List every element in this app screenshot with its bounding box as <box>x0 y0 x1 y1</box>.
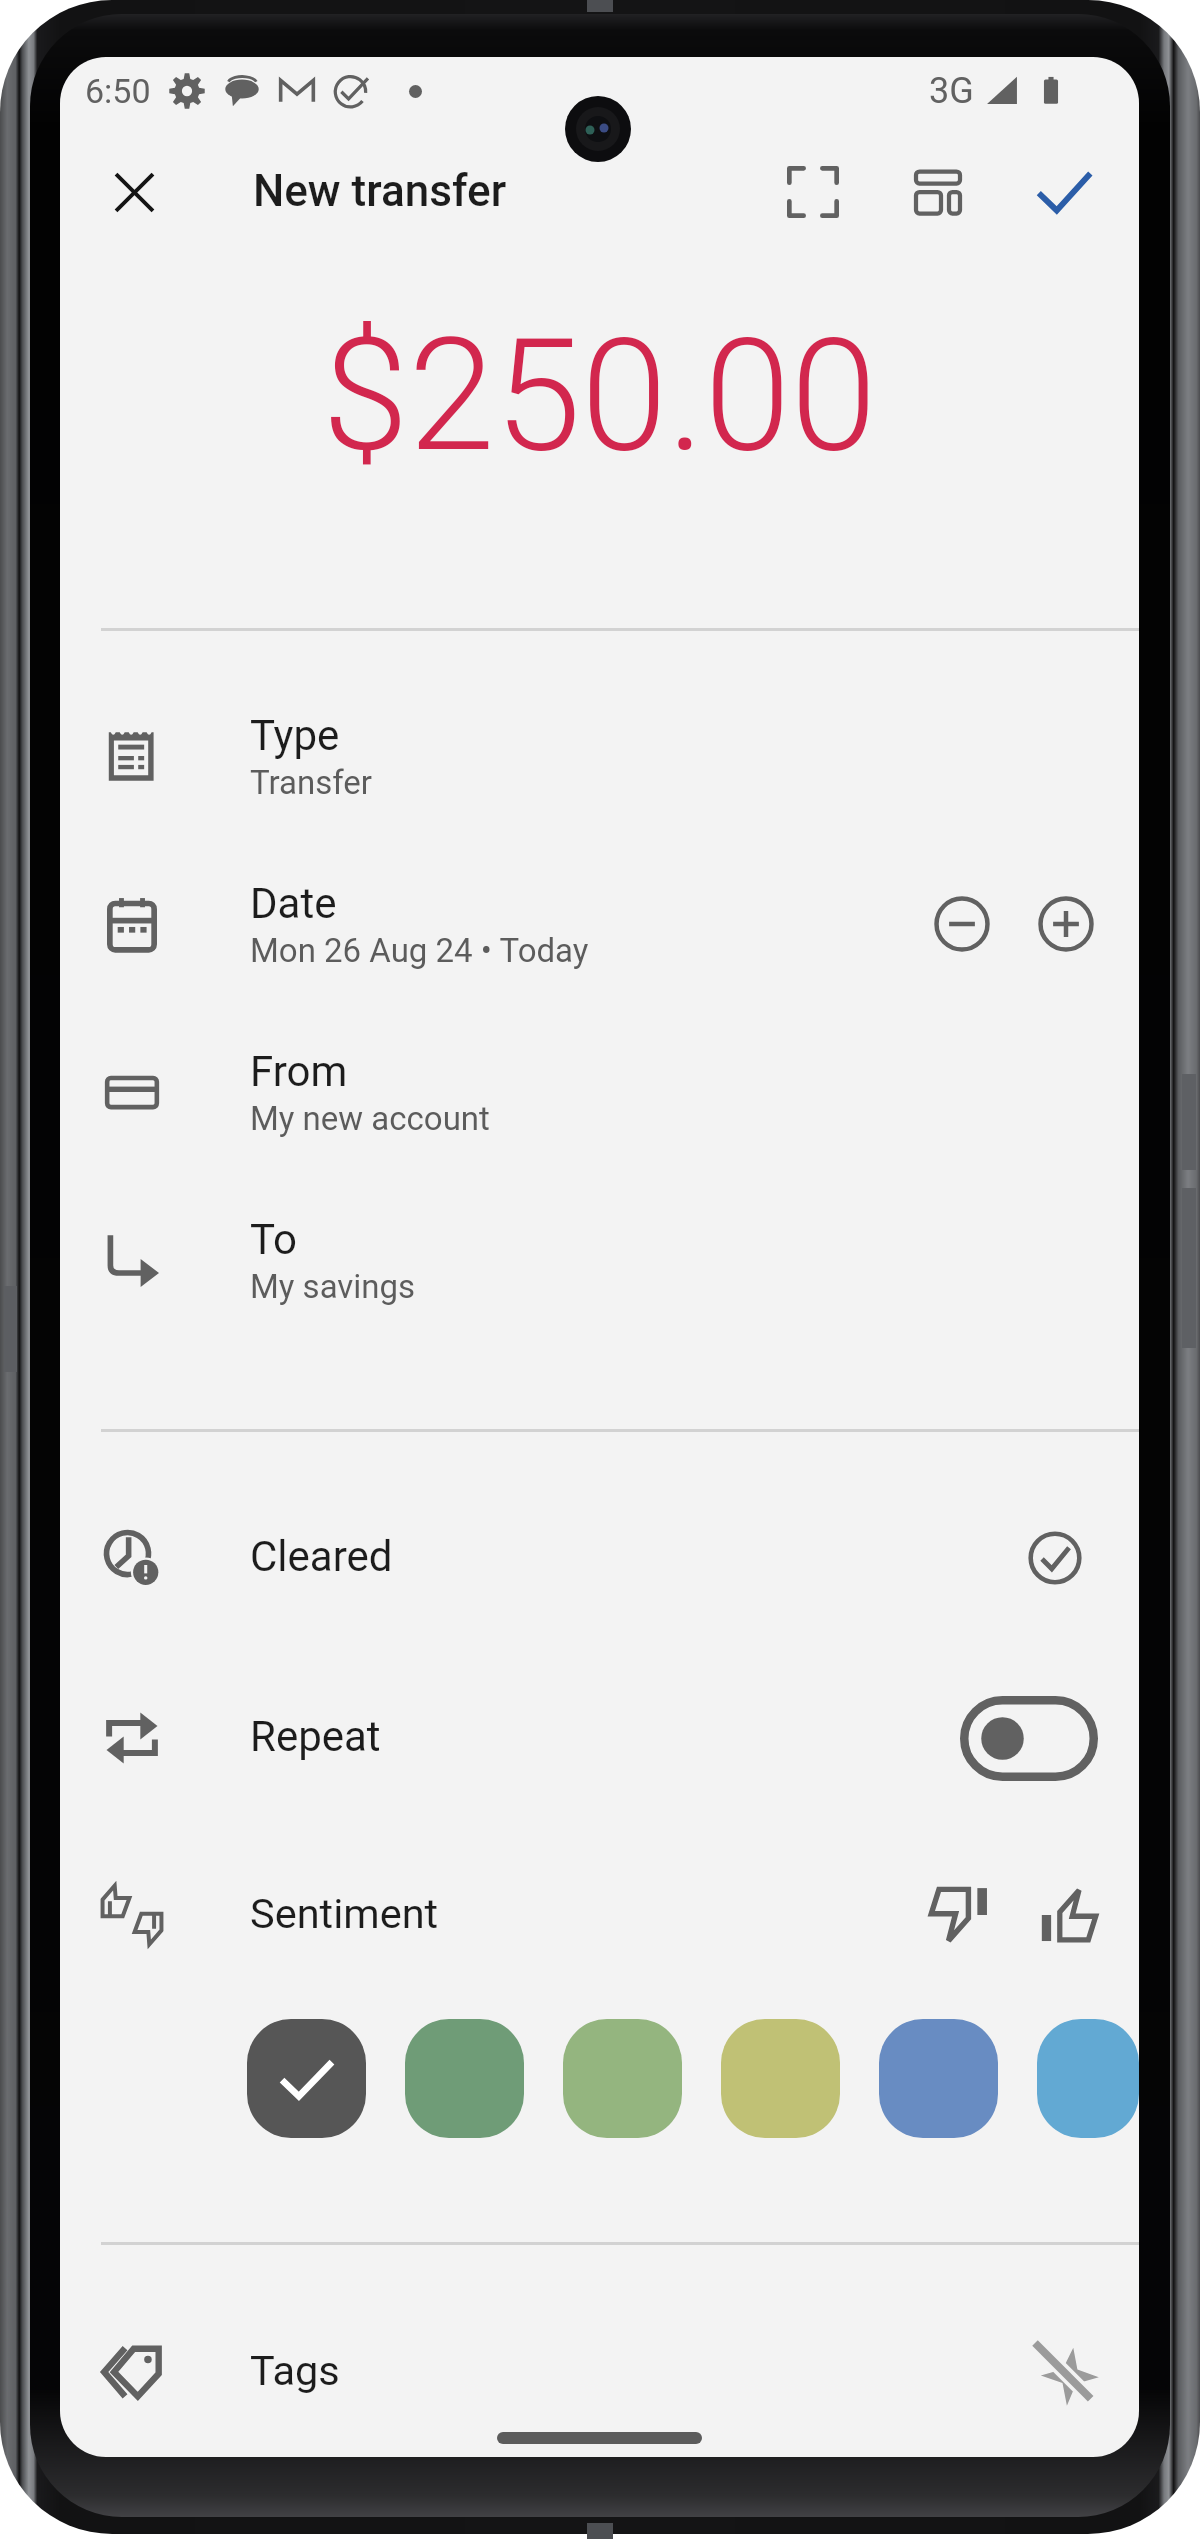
button[interactable]: Previous day <box>922 884 1002 964</box>
button[interactable]: Sentiment colour <box>721 2019 840 2138</box>
staticText: Transfer <box>250 763 372 802</box>
button[interactable]: Close <box>92 150 176 234</box>
staticText: Repeat <box>250 1712 381 1761</box>
button[interactable]: Sentiment colour <box>247 2019 366 2138</box>
button[interactable]: Date <box>60 844 1139 1004</box>
button[interactable]: Positive sentiment <box>1030 1879 1102 1951</box>
button[interactable]: From <box>60 1012 1139 1172</box>
staticText: 3G <box>929 70 974 112</box>
staticText: Type <box>250 711 340 760</box>
staticText: Tags <box>250 2346 340 2395</box>
staticText: New transfer <box>253 165 507 217</box>
staticText: My new account <box>250 1099 490 1138</box>
button[interactable]: Type <box>60 676 1139 836</box>
staticText: 6:50 <box>85 71 151 111</box>
button[interactable]: Layout <box>894 148 982 236</box>
button[interactable]: Sentiment colour <box>879 2019 998 2138</box>
button[interactable]: Sentiment colour <box>1037 2019 1139 2138</box>
staticText: Date <box>250 879 337 928</box>
button[interactable]: Cleared <box>60 1483 1139 1633</box>
button[interactable]: To <box>60 1180 1139 1340</box>
staticText: From <box>250 1047 348 1096</box>
button[interactable]: Tags <box>60 2297 1139 2447</box>
staticText: To <box>250 1215 297 1264</box>
button[interactable]: Sentiment colour <box>405 2019 524 2138</box>
button[interactable]: Repeat <box>60 1663 1139 1813</box>
staticText: My savings <box>250 1267 416 1306</box>
button[interactable]: Scan <box>769 148 857 236</box>
staticText: Cleared <box>250 1532 393 1581</box>
button[interactable]: Save <box>1020 148 1108 236</box>
button[interactable]: Sentiment colour <box>563 2019 682 2138</box>
button[interactable]: Auto tags off <box>1030 2338 1098 2406</box>
staticText: Sentiment <box>250 1889 439 1938</box>
button[interactable]: Next day <box>1026 884 1106 964</box>
staticText: Mon 26 Aug 24 • Today <box>250 931 589 970</box>
button[interactable]: Negative sentiment <box>926 1879 998 1951</box>
button[interactable]: Repeat toggle <box>960 1696 1098 1781</box>
staticText: $250.00 <box>322 305 877 487</box>
